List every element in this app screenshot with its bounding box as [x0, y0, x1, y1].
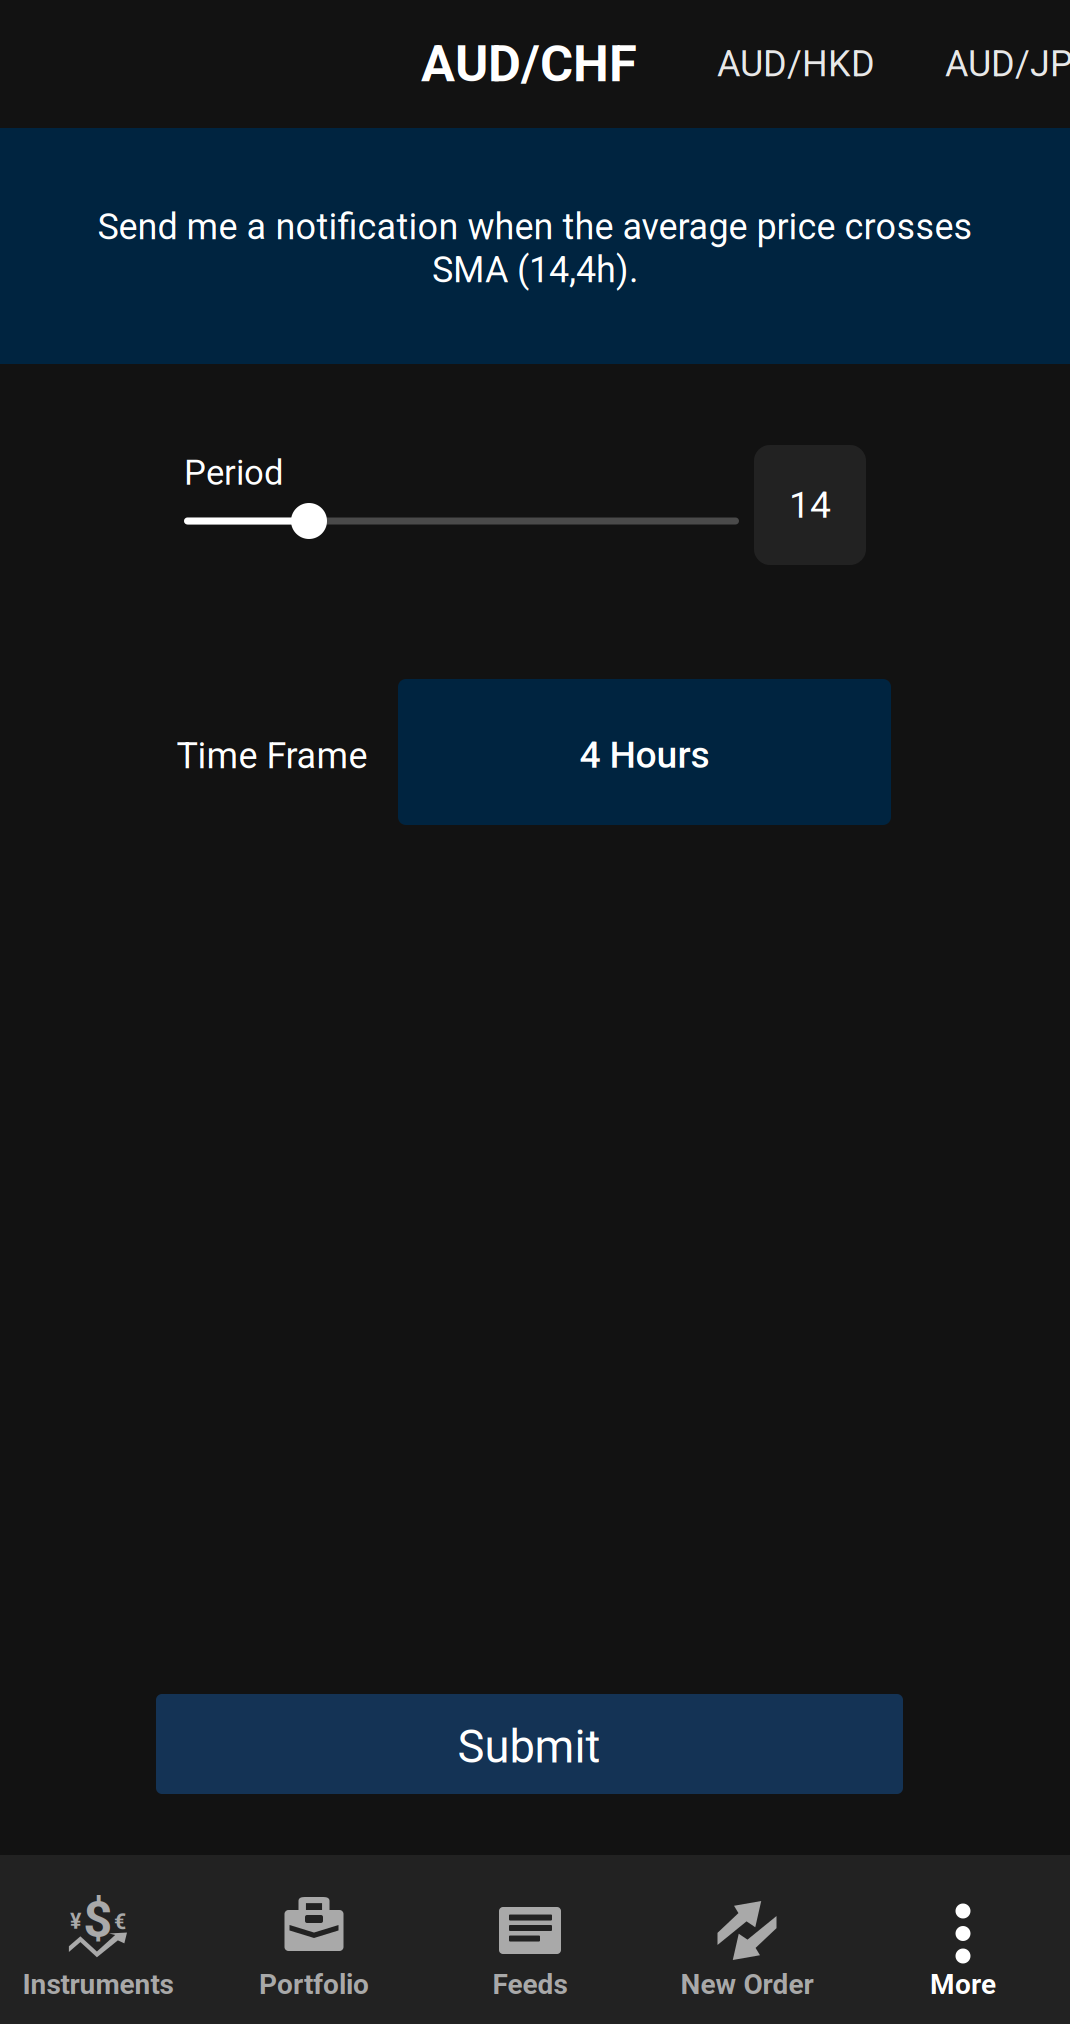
staticText: Instruments: [22, 1968, 173, 2001]
staticText: €: [114, 1909, 126, 1934]
button[interactable]: AUD/JPY: [911, 0, 1070, 128]
button[interactable]: Portfolio: [207, 1855, 421, 2024]
staticText: 4 Hours: [579, 733, 709, 777]
staticText: AUD/JPY: [945, 43, 1070, 85]
staticText: New Order: [680, 1968, 813, 2001]
staticText: More: [930, 1968, 996, 2001]
staticText: Portfolio: [259, 1968, 369, 2001]
staticText: Feeds: [492, 1968, 567, 2001]
button[interactable]: AUD/CHF: [381, 0, 677, 128]
button[interactable]: More: [856, 1855, 1070, 2024]
staticText: ¥: [70, 1909, 81, 1934]
staticText: Send me a notification when the average …: [97, 206, 972, 248]
staticText: $: [83, 1890, 112, 1949]
staticText: SMA (14,4h).: [432, 249, 638, 291]
staticText: Time Frame: [176, 735, 367, 777]
button[interactable]: Submit: [156, 1694, 903, 1794]
button[interactable]: New Order: [640, 1855, 854, 2024]
button[interactable]: Feeds: [423, 1855, 637, 2024]
button[interactable]: AUD/HKD: [683, 0, 909, 128]
staticText: AUD/HKD: [717, 43, 875, 85]
staticText: 14: [789, 483, 831, 527]
staticText: Submit: [457, 1720, 600, 1773]
staticText: AUD/CHF: [421, 34, 637, 94]
staticText: Period: [184, 453, 284, 493]
button[interactable]: ¥: [0, 1855, 205, 2024]
button[interactable]: 4 Hours: [398, 679, 891, 825]
